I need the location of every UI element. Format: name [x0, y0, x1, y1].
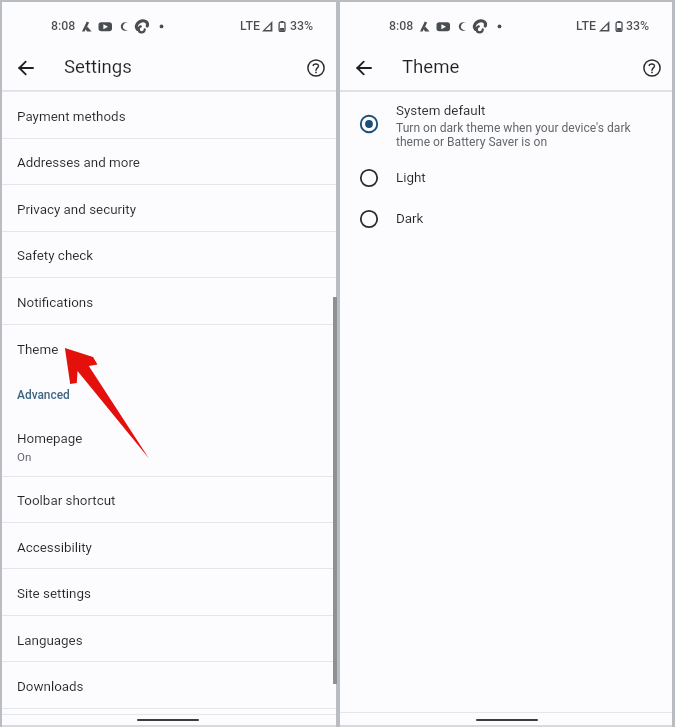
staticText: LTE — [576, 18, 597, 33]
staticText: Light — [396, 170, 426, 186]
button[interactable]: Downloads — [2, 662, 336, 709]
staticText: Turn on dark theme when your device's da… — [396, 121, 635, 149]
button[interactable]: Help — [632, 48, 672, 88]
button[interactable]: Help — [296, 48, 336, 88]
button[interactable]: Site settings — [2, 569, 336, 616]
staticText: Downloads — [17, 679, 84, 695]
staticText: Addresses and more — [17, 155, 140, 171]
staticText: LTE — [240, 18, 261, 33]
button[interactable]: Notifications — [2, 278, 336, 325]
button[interactable]: Languages — [2, 616, 336, 662]
staticText: System default — [396, 103, 486, 119]
staticText: Languages — [17, 633, 83, 649]
staticText: 8:08 — [51, 18, 76, 33]
button[interactable]: Light — [340, 158, 672, 198]
button[interactable]: Safety check — [2, 231, 336, 278]
staticText: Dark — [396, 211, 424, 227]
staticText: Advanced — [17, 388, 70, 402]
staticText: Theme — [402, 56, 460, 78]
staticText: Notifications — [17, 295, 94, 311]
button[interactable]: Addresses and more — [2, 138, 336, 185]
staticText: 8:08 — [389, 18, 414, 33]
staticText: 33% — [626, 18, 650, 33]
staticText: Accessibility — [17, 540, 92, 556]
staticText: Toolbar shortcut — [17, 493, 116, 509]
button[interactable]: System default — [340, 98, 672, 150]
button[interactable]: Payment methods — [2, 92, 336, 139]
staticText: 33% — [290, 18, 314, 33]
button[interactable]: Theme — [2, 325, 336, 372]
button[interactable]: Homepage — [2, 413, 336, 477]
staticText: Safety check — [17, 248, 94, 264]
staticText: Site settings — [17, 586, 91, 602]
button[interactable]: Accessibility — [2, 523, 336, 569]
staticText: Settings — [64, 56, 132, 78]
button[interactable]: Dark — [340, 199, 672, 239]
button[interactable]: Back — [7, 48, 47, 88]
button[interactable]: Back — [345, 48, 385, 88]
button[interactable]: Privacy and security — [2, 185, 336, 232]
staticText: Homepage — [17, 431, 83, 447]
staticText: Payment methods — [17, 109, 126, 125]
button[interactable]: Toolbar shortcut — [2, 476, 336, 523]
staticText: Theme — [17, 342, 59, 358]
staticText: Privacy and security — [17, 202, 137, 218]
staticText: On — [17, 450, 32, 463]
